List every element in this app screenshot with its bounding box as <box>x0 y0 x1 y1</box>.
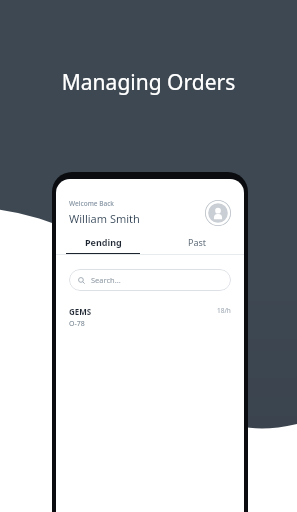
staticText: Managing Orders <box>0 68 297 97</box>
staticText: Search... <box>91 275 121 285</box>
staticText: Pending <box>85 236 122 248</box>
button[interactable]: Past <box>150 236 244 254</box>
staticText: O-78 <box>69 319 85 329</box>
staticText: Welcome Back <box>69 199 115 208</box>
button[interactable]: GEMS <box>56 303 244 332</box>
staticText: Past <box>188 236 207 248</box>
staticText: William Smith <box>69 211 140 226</box>
button[interactable]: Pending <box>56 236 150 254</box>
staticText: GEMS <box>69 306 92 317</box>
button[interactable]: Search... <box>69 269 231 291</box>
button[interactable]: Profile <box>205 200 231 226</box>
staticText: 18/h <box>217 306 231 315</box>
